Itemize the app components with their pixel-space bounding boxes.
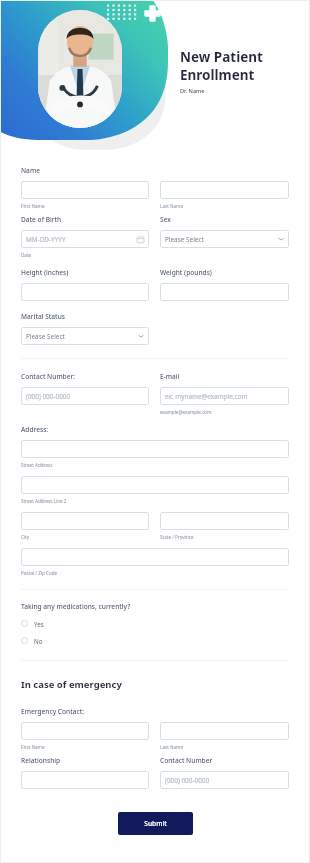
staticText: Submit (144, 819, 167, 828)
button[interactable]: MM-DD-YYYY (21, 230, 149, 248)
staticText: First Name (21, 744, 45, 750)
staticText: Postal / Zip Code (21, 570, 58, 576)
button[interactable] (21, 440, 289, 458)
staticText: (000) 000-0000 (26, 392, 71, 401)
button[interactable] (21, 181, 149, 199)
staticText: Relationship (21, 756, 61, 765)
button[interactable] (21, 771, 149, 789)
staticText: example@example.com (160, 409, 212, 415)
staticText: Please Select (165, 235, 204, 244)
button[interactable]: Submit (118, 812, 193, 835)
staticText: Address: (21, 425, 49, 434)
staticText: MM-DD-YYYY (26, 235, 66, 244)
staticText: ex: myname@example.com (165, 392, 248, 401)
staticText: Enrollment (180, 66, 255, 84)
button[interactable]: No (21, 634, 289, 647)
staticText: Yes (34, 620, 44, 628)
staticText: Last Name (160, 744, 183, 750)
staticText: New Patient (180, 48, 263, 66)
button[interactable] (160, 722, 289, 740)
staticText: Taking any medications, currently? (21, 602, 131, 611)
staticText: (000) 000-0000 (165, 776, 210, 785)
staticText: No (34, 637, 43, 645)
other: Open dropdown (278, 236, 284, 242)
staticText: Date (21, 252, 32, 258)
staticText: Date of Birth (21, 215, 62, 224)
other: Pick date (137, 236, 144, 243)
button[interactable]: Please Select (160, 230, 289, 248)
staticText: Emergency Contact: (21, 707, 85, 716)
button[interactable] (21, 512, 149, 530)
staticText: Name (21, 166, 40, 175)
staticText: First Name (21, 203, 45, 209)
staticText: State / Province (160, 534, 194, 540)
staticText: Street Address Line 2 (21, 498, 67, 504)
button[interactable]: (000) 000-0000 (21, 387, 149, 405)
staticText: Contact Number: (21, 372, 76, 381)
staticText: Please Select (26, 332, 65, 341)
staticText: Contact Number (160, 756, 213, 765)
staticText: In case of emergency (21, 678, 122, 691)
button[interactable]: Please Select (21, 327, 149, 345)
staticText: Height (inches) (21, 268, 69, 277)
button[interactable] (21, 476, 289, 494)
button[interactable] (21, 722, 149, 740)
staticText: Street Address (21, 462, 53, 468)
staticText: E-mail (160, 372, 180, 381)
button[interactable]: (000) 000-0000 (160, 771, 289, 789)
button[interactable] (21, 283, 149, 301)
staticText: Last Name (160, 203, 183, 209)
staticText: Marital Status (21, 312, 65, 321)
other: Open dropdown (138, 333, 144, 339)
staticText: Weight (pounds) (160, 268, 212, 277)
staticText: City (21, 534, 30, 540)
button[interactable] (160, 512, 289, 530)
button[interactable] (21, 548, 289, 566)
button[interactable] (160, 283, 289, 301)
staticText: Dr. Name (180, 87, 205, 95)
button[interactable]: Yes (21, 617, 289, 630)
button[interactable]: ex: myname@example.com (160, 387, 289, 405)
staticText: Sex (160, 215, 171, 224)
button[interactable] (160, 181, 289, 199)
